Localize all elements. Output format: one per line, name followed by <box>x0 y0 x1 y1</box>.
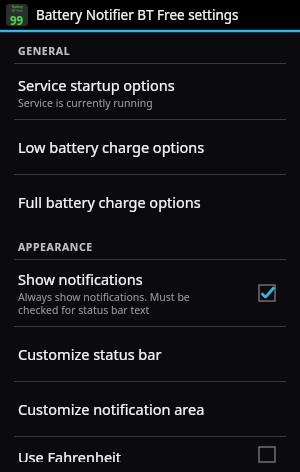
button[interactable]: Customize status bar <box>0 327 300 381</box>
staticText: Customize notification area <box>18 399 205 419</box>
staticText: Customize status bar <box>18 344 162 364</box>
button[interactable]: Customize notification area <box>0 382 300 436</box>
button[interactable]: Unchecked <box>256 447 278 462</box>
button[interactable]: Full battery charge options <box>0 175 300 229</box>
staticText: Service is currently running <box>18 96 153 110</box>
staticText: Battery Notifier BT Free settings <box>36 6 239 24</box>
button[interactable]: Use Fahrenheit <box>0 437 300 472</box>
staticText: Battery <box>12 5 23 9</box>
staticText: Service startup options <box>18 75 175 95</box>
staticText: GENERAL <box>18 44 71 58</box>
button[interactable]: Service startup options <box>0 64 300 119</box>
staticText: 99 <box>10 13 24 26</box>
staticText: Show notifications <box>18 269 143 289</box>
staticText: Always show notifications. Must be check… <box>18 290 190 317</box>
button[interactable]: Checked <box>256 282 278 304</box>
button[interactable]: Battery <box>0 0 300 29</box>
button[interactable]: Low battery charge options <box>0 120 300 174</box>
staticText: APPEARANCE <box>18 240 93 254</box>
staticText: Use Fahrenheit <box>18 447 122 462</box>
staticText: Full battery charge options <box>18 192 201 212</box>
button[interactable]: Show notifications <box>0 260 300 326</box>
staticText: Low battery charge options <box>18 137 205 157</box>
staticText: BT Free <box>12 9 23 13</box>
